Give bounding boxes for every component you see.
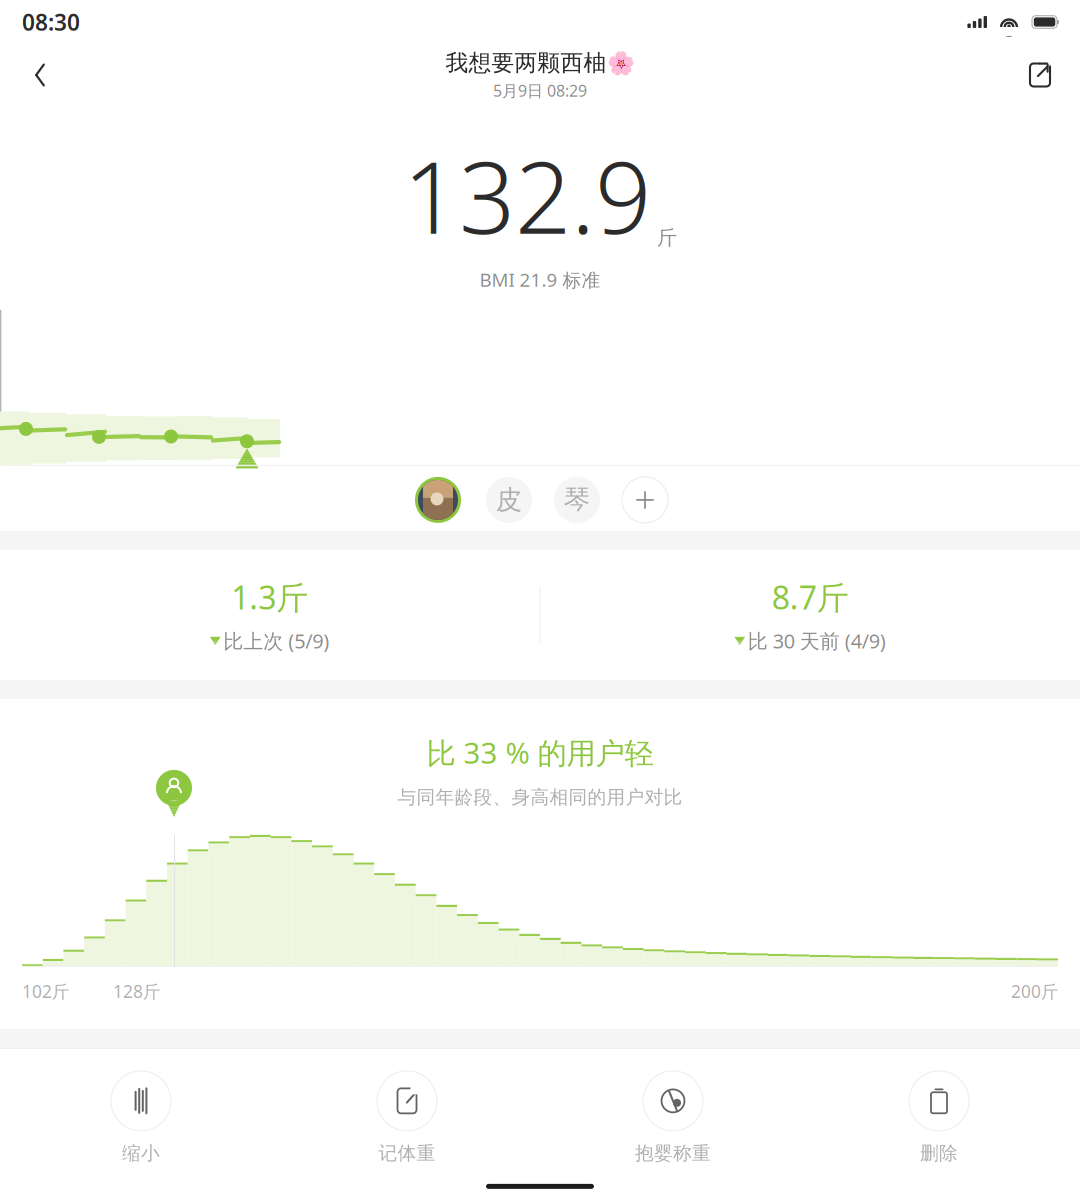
button[interactable]: 皮 (486, 477, 532, 523)
staticText: 记体重 (378, 1142, 435, 1165)
button[interactable]: 返回 (18, 53, 62, 97)
staticText: 抱婴称重 (635, 1142, 711, 1165)
staticText: 200斤 (1011, 980, 1058, 1003)
staticText: 缩小 (122, 1142, 160, 1165)
button[interactable]: 记体重 (274, 1071, 540, 1165)
staticText: 128斤 (113, 980, 160, 1003)
staticText: 102斤 (22, 980, 69, 1003)
staticText: BMI 21.9 标准 (479, 267, 600, 292)
button[interactable]: 添加成员 (622, 477, 668, 523)
button[interactable]: 8.7斤 (540, 576, 1080, 654)
staticText: 08:30 (22, 7, 80, 37)
staticText: 1.3斤 (231, 576, 308, 618)
staticText: 比上次 (5/9) (223, 627, 329, 654)
button[interactable]: 删除 (806, 1071, 1072, 1165)
staticText: 与同年龄段、身高相同的用户对比 (397, 786, 682, 809)
staticText: 5月9日 08:29 (493, 80, 587, 101)
staticText: 皮 (495, 483, 522, 516)
staticText: 琴 (563, 483, 590, 516)
button[interactable]: 琴 (554, 477, 600, 523)
staticText: 132.9 (403, 130, 651, 261)
button[interactable]: 分享 (1018, 53, 1062, 97)
staticText: 我想要两颗西柚🌸 (445, 49, 634, 77)
staticText: 斤 (657, 225, 677, 250)
button[interactable]: 缩小 (8, 1071, 274, 1165)
staticText: 比 30 天前 (4/9) (748, 627, 886, 654)
button[interactable]: 1.3斤 (0, 576, 539, 654)
staticText: 比 33 % 的用户轻 (426, 733, 653, 772)
staticText: 删除 (920, 1142, 958, 1165)
button[interactable]: 抱婴称重 (540, 1071, 806, 1165)
button[interactable]: 当前用户 (412, 474, 464, 526)
staticText: 8.7斤 (772, 576, 849, 618)
